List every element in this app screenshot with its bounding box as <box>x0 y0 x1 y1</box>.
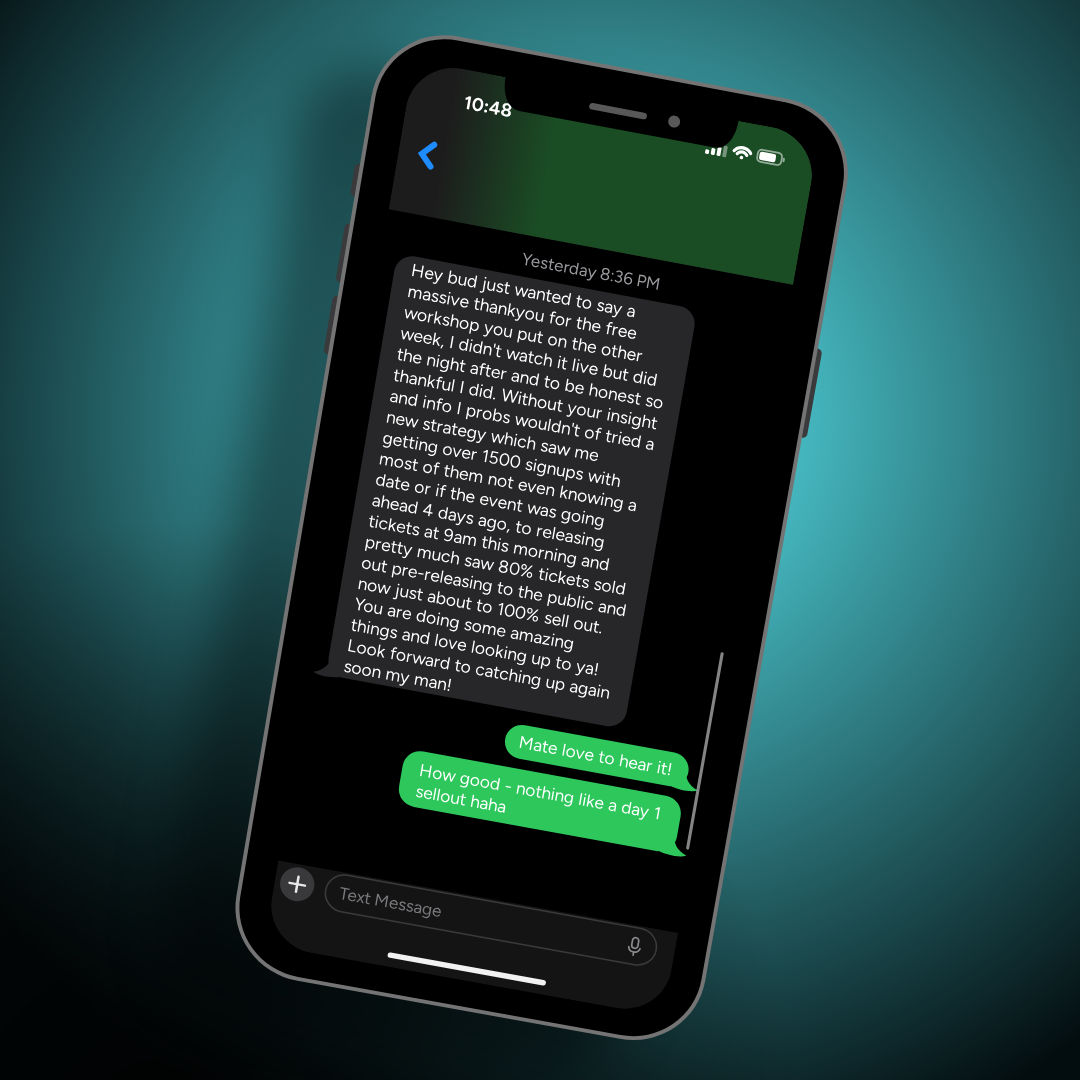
button[interactable]: iPhone message conversation mockup <box>0 0 1080 1080</box>
